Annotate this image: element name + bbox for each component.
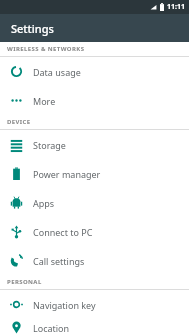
other: Navigation key bbox=[10, 298, 23, 311]
other: Apps bbox=[10, 196, 23, 209]
staticText: Data usage bbox=[33, 66, 81, 78]
button[interactable]: Apps bbox=[0, 188, 189, 217]
staticText: More bbox=[33, 95, 56, 107]
other: Data usage bbox=[10, 65, 23, 78]
button[interactable]: Connect to PC bbox=[0, 217, 189, 246]
staticText: Power manager bbox=[33, 168, 101, 180]
button[interactable]: Call settings bbox=[0, 246, 189, 275]
button[interactable]: Navigation key bbox=[0, 290, 189, 319]
staticText: PERSONAL bbox=[7, 278, 42, 286]
staticText: 11:11 bbox=[167, 2, 185, 12]
staticText: Call settings bbox=[33, 255, 85, 267]
staticText: Apps bbox=[33, 197, 55, 209]
button[interactable]: Storage bbox=[0, 130, 189, 159]
button[interactable]: Power manager bbox=[0, 159, 189, 188]
other: Connect to PC bbox=[10, 225, 23, 238]
button[interactable]: Data usage bbox=[0, 57, 189, 86]
staticText: DEVICE bbox=[7, 118, 31, 126]
button[interactable]: Location bbox=[0, 319, 189, 336]
staticText: Settings bbox=[11, 21, 54, 36]
other: Call settings bbox=[10, 254, 23, 267]
staticText: Connect to PC bbox=[33, 226, 93, 238]
other: More bbox=[10, 94, 23, 107]
staticText: WIRELESS & NETWORKS bbox=[7, 45, 85, 53]
staticText: Navigation key bbox=[33, 299, 96, 311]
staticText: Location bbox=[33, 322, 70, 334]
staticText: Storage bbox=[33, 139, 66, 151]
button[interactable]: More bbox=[0, 86, 189, 115]
other: Storage bbox=[10, 138, 23, 151]
other: Location bbox=[10, 321, 23, 334]
other: Power manager bbox=[10, 167, 23, 180]
